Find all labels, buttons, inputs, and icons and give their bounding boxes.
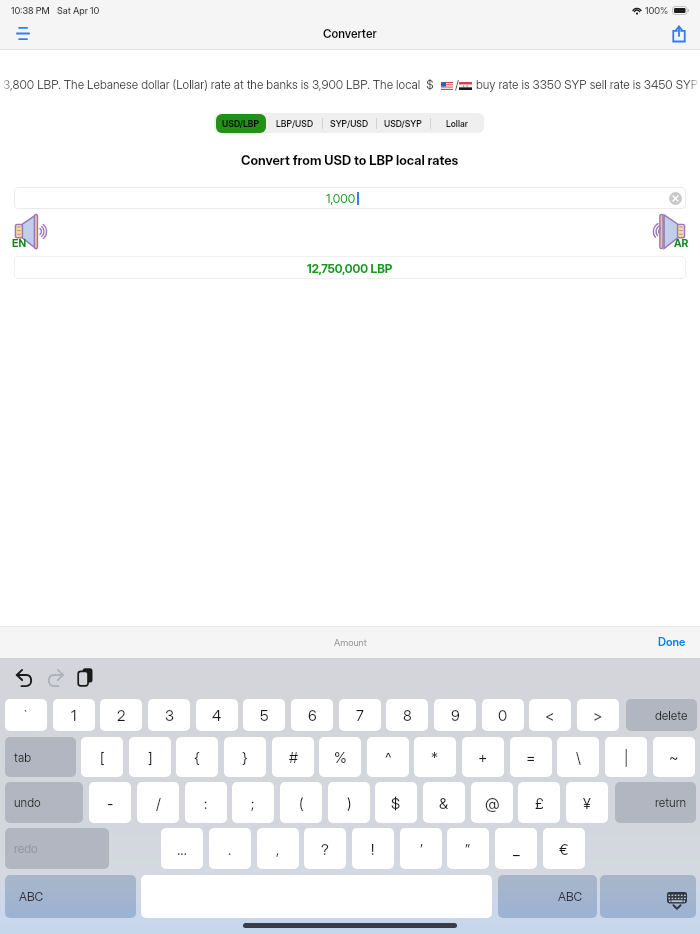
- button[interactable]: @: [471, 782, 513, 823]
- staticText: €: [559, 840, 569, 858]
- button[interactable]: Hide keyboard: [600, 875, 696, 918]
- staticText: redo: [14, 841, 38, 856]
- button[interactable]: delete: [626, 699, 697, 731]
- staticText: 6: [308, 706, 317, 724]
- staticText: /: [156, 794, 161, 812]
- button[interactable]: \: [557, 737, 599, 777]
- button[interactable]: ): [328, 782, 370, 823]
- staticText: USD/LBP: [222, 118, 260, 129]
- staticText: /: [455, 77, 459, 92]
- button[interactable]: ^: [367, 737, 409, 777]
- button[interactable]: {: [176, 737, 218, 777]
- button[interactable]: 0: [482, 699, 524, 731]
- staticText: }: [242, 748, 248, 766]
- staticText: *: [431, 748, 439, 766]
- button[interactable]: ABC: [498, 875, 597, 918]
- button[interactable]: #: [272, 737, 314, 777]
- staticText: tab: [14, 750, 32, 765]
- button[interactable]: LBP/USD: [268, 113, 322, 133]
- button[interactable]: +: [462, 737, 504, 777]
- button[interactable]: Lollar: [430, 113, 484, 133]
- button[interactable]: Speak English: [13, 214, 48, 249]
- staticText: return: [655, 795, 687, 810]
- button[interactable]: Paste: [77, 667, 94, 687]
- button[interactable]: 8: [386, 699, 428, 731]
- button[interactable]: `: [5, 699, 47, 731]
- staticText: delete: [655, 708, 688, 723]
- staticText: ]: [148, 748, 153, 766]
- staticText: >: [593, 706, 603, 724]
- button[interactable]: 1: [53, 699, 95, 731]
- button[interactable]: ;: [232, 782, 274, 823]
- button[interactable]: Share: [658, 18, 700, 49]
- button[interactable]: 12,750,000 LBP: [14, 256, 686, 279]
- button[interactable]: Done: [560, 626, 700, 658]
- staticText: +: [478, 748, 488, 766]
- button[interactable]: tab: [5, 737, 76, 777]
- button[interactable]: 6: [291, 699, 333, 731]
- button[interactable]: 4: [196, 699, 238, 731]
- button[interactable]: >: [577, 699, 619, 731]
- button[interactable]: *: [414, 737, 456, 777]
- button[interactable]: Undo: [16, 669, 33, 687]
- button[interactable]: ABC: [5, 875, 136, 918]
- button[interactable]: Speak Arabic: [652, 214, 687, 249]
- staticText: :: [204, 794, 208, 812]
- staticText: #: [289, 748, 298, 766]
- button[interactable]: 3: [148, 699, 190, 731]
- button[interactable]: ,: [257, 828, 299, 869]
- button[interactable]: Menu: [0, 18, 46, 49]
- button[interactable]: 7: [339, 699, 381, 731]
- button[interactable]: return: [615, 782, 696, 823]
- button[interactable]: Redo: [47, 669, 64, 687]
- button[interactable]: }: [224, 737, 266, 777]
- button[interactable]: <: [529, 699, 571, 731]
- staticText: £: [535, 794, 544, 812]
- button[interactable]: 5: [243, 699, 285, 731]
- button[interactable]: -: [89, 782, 131, 823]
- button[interactable]: £: [518, 782, 560, 823]
- staticText: ~: [669, 748, 679, 766]
- staticText: Sat Apr 10: [57, 5, 100, 16]
- staticText: ;: [251, 794, 255, 812]
- button[interactable]: !: [352, 828, 394, 869]
- button[interactable]: |: [605, 737, 647, 777]
- button[interactable]: ’: [400, 828, 442, 869]
- staticText: $: [391, 794, 401, 812]
- staticText: SYP/USD: [330, 118, 369, 129]
- button[interactable]: [: [81, 737, 123, 777]
- button[interactable]: %: [319, 737, 361, 777]
- button[interactable]: 1,000: [14, 187, 686, 209]
- staticText: 1,000: [326, 191, 356, 206]
- staticText: \: [576, 748, 581, 766]
- button[interactable]: &: [423, 782, 465, 823]
- button[interactable]: (: [280, 782, 322, 823]
- button[interactable]: SYP/USD: [322, 113, 376, 133]
- button[interactable]: _: [495, 828, 537, 869]
- button[interactable]: =: [510, 737, 552, 777]
- button[interactable]: redo: [5, 828, 109, 869]
- button[interactable]: undo: [5, 782, 83, 823]
- button[interactable]: USD/LBP: [214, 113, 268, 133]
- button[interactable]: .: [209, 828, 251, 869]
- staticText: Amount: [334, 637, 367, 648]
- button[interactable]: Clear text: [669, 192, 682, 205]
- staticText: …: [177, 840, 187, 858]
- staticText: 7: [356, 706, 364, 724]
- button[interactable]: :: [185, 782, 227, 823]
- button[interactable]: ~: [653, 737, 695, 777]
- button[interactable]: USD/SYP: [376, 113, 430, 133]
- button[interactable]: ?: [304, 828, 346, 869]
- staticText: ?: [321, 840, 329, 858]
- button[interactable]: €: [543, 828, 585, 869]
- button[interactable]: ]: [129, 737, 171, 777]
- button[interactable]: 9: [434, 699, 476, 731]
- button[interactable]: /: [137, 782, 179, 823]
- staticText: ¥: [583, 794, 591, 812]
- button[interactable]: 2: [100, 699, 142, 731]
- button[interactable]: ¥: [566, 782, 608, 823]
- button[interactable]: …: [161, 828, 203, 869]
- button[interactable]: ”: [447, 828, 489, 869]
- button[interactable]: $: [375, 782, 417, 823]
